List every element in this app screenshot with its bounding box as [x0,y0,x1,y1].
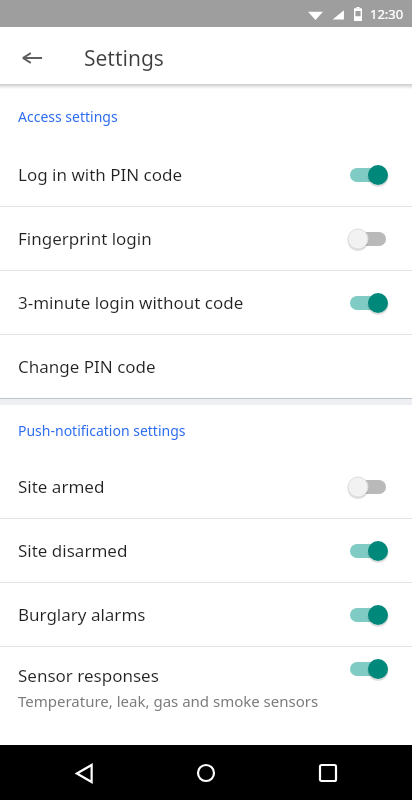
staticText: Site disarmed [18,539,128,562]
staticText: Fingerprint login [18,227,152,250]
staticText: Log in with PIN code [18,163,183,186]
button[interactable]: 3-minute login without code [0,271,412,334]
button[interactable]: Toggle [342,225,394,253]
staticText: 12:30 [370,5,404,23]
button[interactable]: Toggle [342,289,394,317]
staticText: Sensor responses [18,664,159,687]
staticText: Push-notification settings [18,421,186,440]
button[interactable]: Change PIN code [0,335,412,398]
staticText: Burglary alarms [18,603,146,626]
button[interactable]: Site armed [0,455,412,518]
button[interactable]: Home [182,749,230,797]
button[interactable]: Site disarmed [0,519,412,582]
button[interactable]: Toggle [342,161,394,189]
staticText: Access settings [18,107,118,126]
button[interactable]: Back [60,749,108,797]
button[interactable]: Fingerprint login [0,207,412,270]
button[interactable]: Toggle [342,655,394,683]
button[interactable]: Back [8,34,56,82]
staticText: Settings [84,44,164,73]
staticText: Site armed [18,475,105,498]
staticText: Change PIN code [18,355,156,378]
button[interactable]: Log in with PIN code [0,143,412,206]
staticText: Temperature, leak, gas and smoke sensors [18,691,319,711]
button[interactable]: Recents [304,749,352,797]
button[interactable]: Burglary alarms [0,583,412,646]
button[interactable]: Toggle [342,601,394,629]
button[interactable]: Sensor responses [0,647,412,727]
button[interactable]: Toggle [342,537,394,565]
button[interactable]: Toggle [342,473,394,501]
staticText: 3-minute login without code [18,291,244,314]
